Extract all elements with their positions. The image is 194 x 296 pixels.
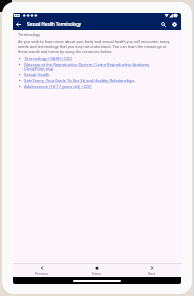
staticText: As you seek to learn more about your bod… [18,39,174,54]
staticText: Sexual Health Terminology [27,22,81,27]
button[interactable]: Previous [16,266,68,276]
staticText: Glossary of the Reproductive System | Le… [24,62,174,71]
button[interactable]: Glossary of the Reproductive System | Le… [18,62,174,72]
staticText: Sexual Health [24,72,50,77]
button[interactable]: Adolescence (10-17 years old) | CDC [18,84,174,90]
staticText: Terminology | SASH | CDC [24,56,73,61]
staticText: SafeTeens: Your Guide To Sex Ed and Heal… [24,78,135,83]
button[interactable]: Back [13,19,24,30]
staticText: Home [92,272,102,276]
staticText: Adolescence (10-17 years old) | CDC [24,84,92,89]
staticText: Terminology [18,32,41,37]
staticText: Previous [35,272,49,276]
button[interactable]: SafeTeens: Your Guide To Sex Ed and Heal… [18,78,174,84]
staticText: Next [148,272,156,276]
button[interactable]: Sexual Health [18,72,174,78]
button[interactable]: Home [71,266,123,276]
button[interactable]: Next [126,266,178,276]
button[interactable]: Settings [169,19,180,30]
button[interactable]: Terminology | SASH | CDC [18,56,174,62]
button[interactable]: Search [158,19,169,30]
